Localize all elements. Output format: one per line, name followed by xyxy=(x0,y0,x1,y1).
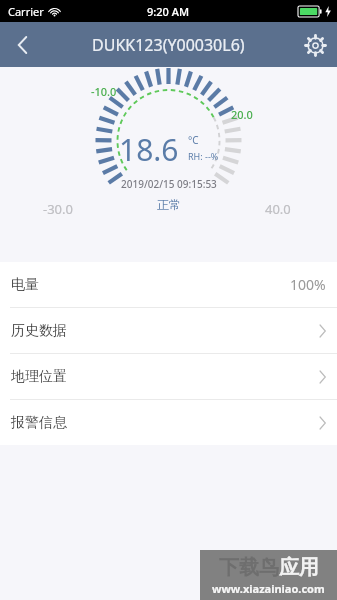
staticText: -30.0 xyxy=(43,200,73,218)
staticText: 历史数据 xyxy=(11,322,67,340)
staticText: -10.0 xyxy=(91,84,117,99)
staticText: 9:20 AM xyxy=(147,4,190,19)
staticText: DUKK123(Y00030L6) xyxy=(92,34,245,56)
staticText: 报警信息 xyxy=(11,414,67,432)
staticText: 正常 xyxy=(157,197,181,212)
staticText: www.xiazainiao.com xyxy=(212,581,325,596)
staticText: 2019/02/15 09:15:53 xyxy=(121,177,217,191)
staticText: 20.0 xyxy=(231,107,253,122)
button[interactable]: 历史数据 xyxy=(0,308,337,353)
staticText: 应用 xyxy=(279,555,319,580)
staticText: Carrier xyxy=(8,4,44,19)
staticText: 40.0 xyxy=(265,200,291,218)
staticText: 电量 xyxy=(11,276,39,294)
staticText: 100% xyxy=(290,275,326,294)
staticText: 18.6 xyxy=(119,129,179,170)
staticText: 下载鸟 xyxy=(219,555,279,580)
button[interactable]: Back xyxy=(0,23,44,67)
staticText: RH: --% xyxy=(188,150,219,162)
button[interactable]: 地理位置 xyxy=(0,354,337,399)
staticText: °C xyxy=(188,133,199,147)
button[interactable]: 电量 xyxy=(0,262,337,307)
staticText: 地理位置 xyxy=(11,368,67,386)
button[interactable]: Settings xyxy=(293,23,337,67)
button[interactable]: 报警信息 xyxy=(0,400,337,445)
